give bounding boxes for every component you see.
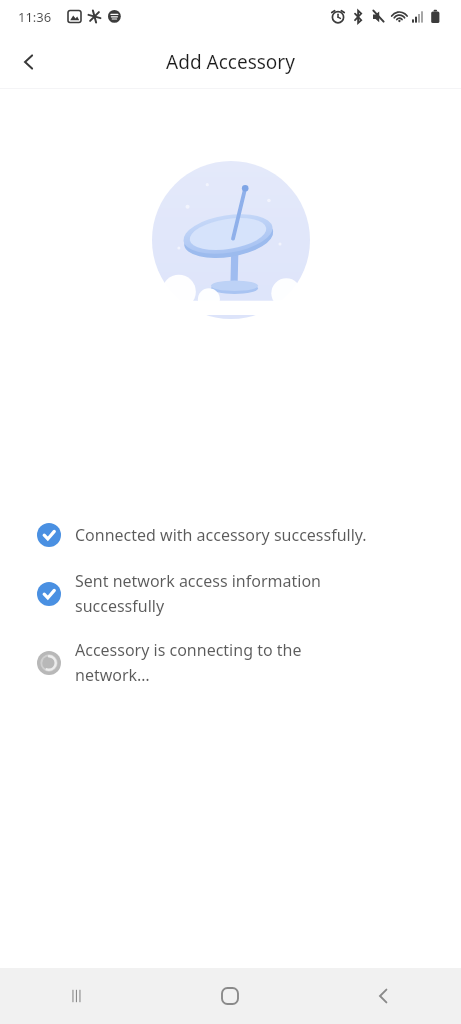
button[interactable]: Back [307, 968, 461, 1024]
button[interactable]: Back [6, 39, 52, 85]
staticText: Add Accessory [166, 49, 295, 75]
button[interactable]: Sent network access information [36, 570, 441, 617]
staticText: Accessory is connecting to the [75, 639, 302, 661]
staticText: network… [75, 664, 150, 686]
staticText: successfully [75, 595, 165, 617]
staticText: Sent network access information [75, 570, 321, 592]
button[interactable]: Recent apps [0, 968, 153, 1024]
staticText: Connected with accessory successfully. [75, 524, 367, 546]
button[interactable]: Home [153, 968, 307, 1024]
staticText: 11:36 [18, 8, 52, 26]
button[interactable]: Accessory is connecting to the [36, 639, 441, 686]
button[interactable]: Connected with accessory successfully. [36, 522, 441, 548]
